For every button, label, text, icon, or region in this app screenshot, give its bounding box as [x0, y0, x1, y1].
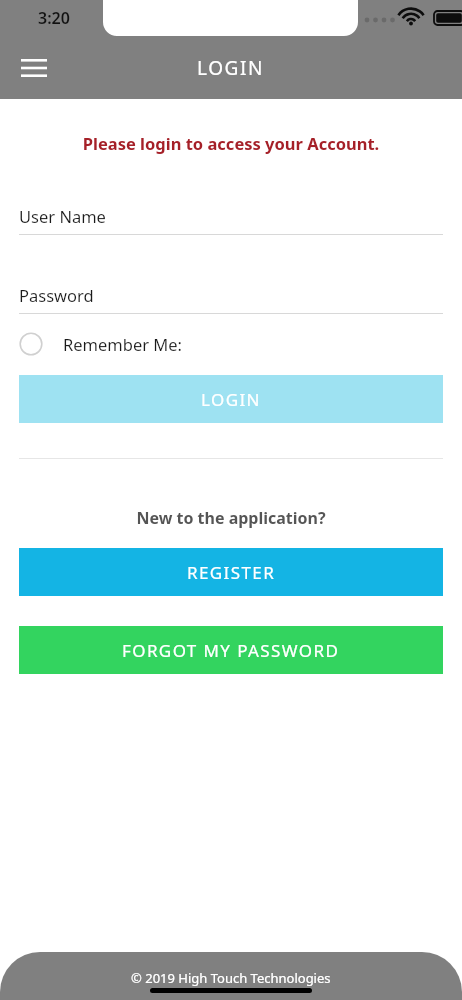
button[interactable]: FORGOT MY PASSWORD [19, 626, 443, 674]
staticText: Remember Me: [63, 333, 182, 355]
staticText: FORGOT MY PASSWORD [122, 639, 340, 662]
staticText: Please login to access your Account. [19, 132, 443, 154]
staticText: New to the application? [19, 507, 443, 529]
button[interactable]: Remember Me: [19, 326, 443, 362]
staticText: © 2019 High Touch Technologies [131, 969, 331, 987]
staticText: Password [19, 284, 94, 306]
button[interactable]: Menu [12, 46, 56, 90]
button[interactable]: LOGIN [19, 375, 443, 423]
staticText: LOGIN [201, 388, 261, 411]
staticText: LOGIN [197, 55, 265, 81]
staticText: REGISTER [187, 561, 276, 584]
staticText: User Name [19, 205, 106, 227]
staticText: 3:20 [38, 7, 70, 29]
button[interactable]: REGISTER [19, 548, 443, 596]
